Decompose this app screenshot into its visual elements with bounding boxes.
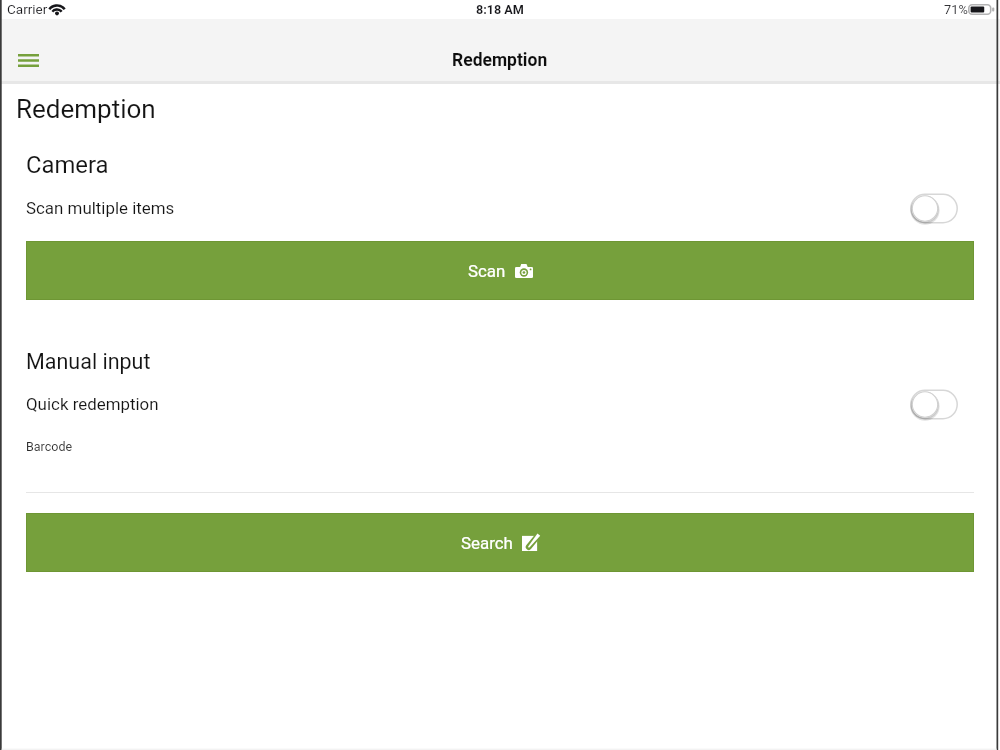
staticText: Scan multiple items	[26, 198, 175, 218]
button[interactable]: Toggle Scan multiple items, off	[910, 193, 958, 224]
staticText: Scan	[468, 261, 506, 281]
button[interactable]: Toggle Quick redemption, off	[910, 389, 958, 420]
staticText: 8:18 AM	[476, 2, 524, 17]
button[interactable]: Scan multiple items	[0, 191, 1000, 225]
staticText: Carrier	[7, 1, 48, 17]
staticText: Search	[461, 533, 513, 553]
staticText: Manual input	[26, 349, 151, 374]
staticText: Quick redemption	[26, 394, 159, 414]
staticText: Redemption	[16, 94, 156, 124]
staticText: Barcode	[26, 439, 73, 454]
staticText: 71%	[944, 2, 968, 17]
staticText: Redemption	[452, 50, 548, 71]
button[interactable]: Scan	[26, 241, 974, 300]
button[interactable]: Search	[26, 513, 974, 572]
button[interactable]: Quick redemption	[0, 387, 1000, 421]
button[interactable]: Menu	[9, 41, 47, 79]
staticText: Camera	[26, 151, 109, 179]
